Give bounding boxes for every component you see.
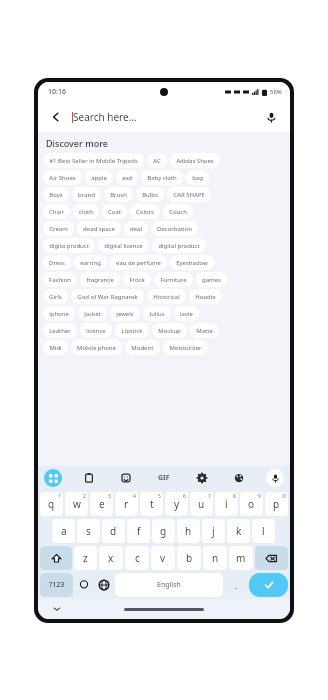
button[interactable]: Modern (125, 340, 160, 355)
button[interactable]: digital product (152, 238, 206, 253)
button[interactable]: Couch (163, 204, 193, 219)
button[interactable]: eau de perfume (110, 255, 167, 270)
button[interactable]: i (215, 492, 238, 516)
button[interactable]: n (203, 546, 227, 570)
button[interactable]: licence (80, 323, 112, 338)
button[interactable]: u (190, 492, 213, 516)
button[interactable]: brand (72, 187, 101, 202)
button[interactable]: Keyboard modes (44, 469, 62, 487)
button[interactable]: digital licence (98, 238, 149, 253)
button[interactable]: t (140, 492, 163, 516)
button[interactable]: bag (186, 170, 209, 185)
button[interactable]: cloth (73, 204, 99, 219)
button[interactable]: y (165, 492, 188, 516)
button[interactable]: Lipstick (115, 323, 149, 338)
button[interactable]: v (151, 546, 175, 570)
button[interactable]: Voice input (266, 469, 284, 487)
button[interactable]: Themes (230, 469, 248, 487)
button[interactable]: Key (255, 546, 288, 570)
button[interactable]: Adidas Shoes (170, 153, 220, 168)
button[interactable]: dead space (77, 221, 121, 236)
button[interactable]: p (265, 492, 288, 516)
button[interactable]: z (74, 546, 97, 570)
button[interactable]: Chair (43, 204, 70, 219)
button[interactable]: Settings (193, 469, 211, 487)
button[interactable]: c (125, 546, 149, 570)
button[interactable]: earring (74, 255, 107, 270)
button[interactable]: lavie (174, 306, 199, 321)
button[interactable]: Back (46, 107, 66, 127)
button[interactable]: GIF (153, 469, 175, 487)
button[interactable]: iphone (43, 306, 75, 321)
button[interactable]: Clipboard (80, 469, 98, 487)
button[interactable]: Coat (102, 204, 127, 219)
button[interactable]: Cream (43, 221, 74, 236)
button[interactable]: Eyeshadow (170, 255, 214, 270)
button[interactable]: j (202, 519, 225, 543)
button[interactable]: Jacket (78, 306, 107, 321)
button[interactable]: Change language (94, 573, 113, 597)
button[interactable]: . (225, 573, 247, 597)
button[interactable]: Hoodie (189, 289, 222, 304)
button[interactable]: Enter (249, 573, 288, 597)
button[interactable]: k (227, 519, 250, 543)
button[interactable]: q (40, 492, 63, 516)
button[interactable]: Colors (130, 204, 160, 219)
button[interactable]: g (152, 519, 175, 543)
button[interactable]: Decorbation (151, 221, 198, 236)
button[interactable]: CAR SHAPE (167, 187, 211, 202)
button[interactable]: Midi (43, 340, 68, 355)
button[interactable]: Historical (147, 289, 186, 304)
button[interactable]: Stickers (117, 469, 135, 487)
button[interactable]: Voice search (260, 106, 282, 128)
button[interactable]: Boys (43, 187, 69, 202)
button[interactable]: #1 Best Seller in Mobile Tripods (43, 153, 144, 168)
button[interactable]: e (90, 492, 113, 516)
button[interactable]: Air Shoes (43, 170, 82, 185)
button[interactable]: h (177, 519, 200, 543)
button[interactable]: s (77, 519, 100, 543)
button[interactable]: Julius (143, 306, 171, 321)
button[interactable]: b (177, 546, 201, 570)
button[interactable]: Matte (190, 323, 219, 338)
button[interactable]: God of War Ragnarok (71, 289, 144, 304)
button[interactable]: Bulbs (136, 187, 164, 202)
button[interactable]: ?123 (40, 573, 73, 597)
button[interactable]: Mockup (152, 323, 187, 338)
staticText: 4 (133, 493, 136, 500)
button[interactable]: Baby cloth (141, 170, 183, 185)
button[interactable]: Brush (104, 187, 133, 202)
button[interactable]: Emoji (75, 573, 92, 597)
button[interactable]: Leather (43, 323, 77, 338)
button[interactable]: AC (147, 153, 167, 168)
button[interactable]: English (115, 573, 223, 597)
button[interactable]: m (229, 546, 253, 570)
button[interactable]: games (196, 272, 227, 287)
button[interactable]: x (99, 546, 123, 570)
button[interactable]: Hide keyboard (50, 602, 64, 616)
button[interactable]: Moisturizer (163, 340, 208, 355)
button[interactable]: jewels (110, 306, 140, 321)
button[interactable]: d (102, 519, 125, 543)
button[interactable]: asd (116, 170, 138, 185)
button[interactable]: Dress (43, 255, 71, 270)
button[interactable]: apple (85, 170, 113, 185)
button[interactable]: Mobile phone (71, 340, 122, 355)
button[interactable]: Frock (123, 272, 151, 287)
button[interactable]: o (240, 492, 263, 516)
button[interactable]: Search here... (72, 102, 260, 132)
button[interactable]: Key (40, 546, 72, 570)
button[interactable]: l (252, 519, 275, 543)
button[interactable]: Furniture (154, 272, 193, 287)
button[interactable]: r (115, 492, 138, 516)
button[interactable]: Fashion (43, 272, 77, 287)
button[interactable]: digita product (43, 238, 95, 253)
button[interactable]: Girls (43, 289, 68, 304)
button[interactable]: fragrance (80, 272, 120, 287)
button[interactable]: deal (124, 221, 148, 236)
staticText: brand (78, 191, 95, 199)
button[interactable]: f (127, 519, 150, 543)
button[interactable]: a (52, 519, 75, 543)
button[interactable]: w (65, 492, 88, 516)
staticText: jewels (116, 310, 134, 318)
